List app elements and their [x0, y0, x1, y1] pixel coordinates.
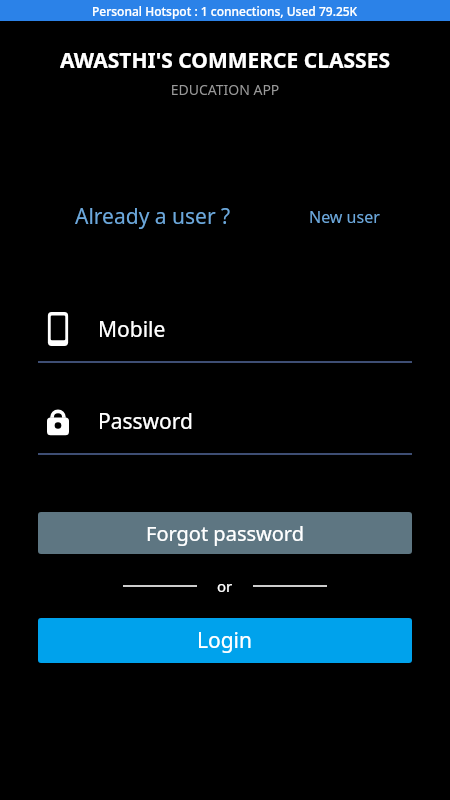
staticText: Already a user ? — [75, 202, 231, 231]
staticText: Forgot password — [146, 520, 305, 547]
button[interactable]: Mobile number — [38, 311, 412, 363]
staticText: Personal Hotspot : 1 connections, Used 7… — [92, 3, 358, 19]
button[interactable]: New user — [309, 204, 380, 230]
staticText: New user — [309, 206, 380, 228]
staticText: or — [217, 576, 233, 596]
staticText: AWASTHI'S COMMERCE CLASSES — [0, 46, 450, 75]
other: Password — [38, 403, 78, 439]
staticText: EDUCATION APP — [0, 80, 450, 99]
button[interactable]: Already a user ? — [75, 200, 231, 233]
staticText: Password — [98, 407, 193, 436]
button[interactable]: Login — [38, 618, 412, 663]
button[interactable]: Password — [38, 403, 412, 455]
button[interactable]: Forgot password — [38, 512, 412, 554]
staticText: Mobile — [98, 315, 166, 344]
other: Mobile number — [38, 311, 78, 347]
staticText: Login — [197, 626, 253, 655]
